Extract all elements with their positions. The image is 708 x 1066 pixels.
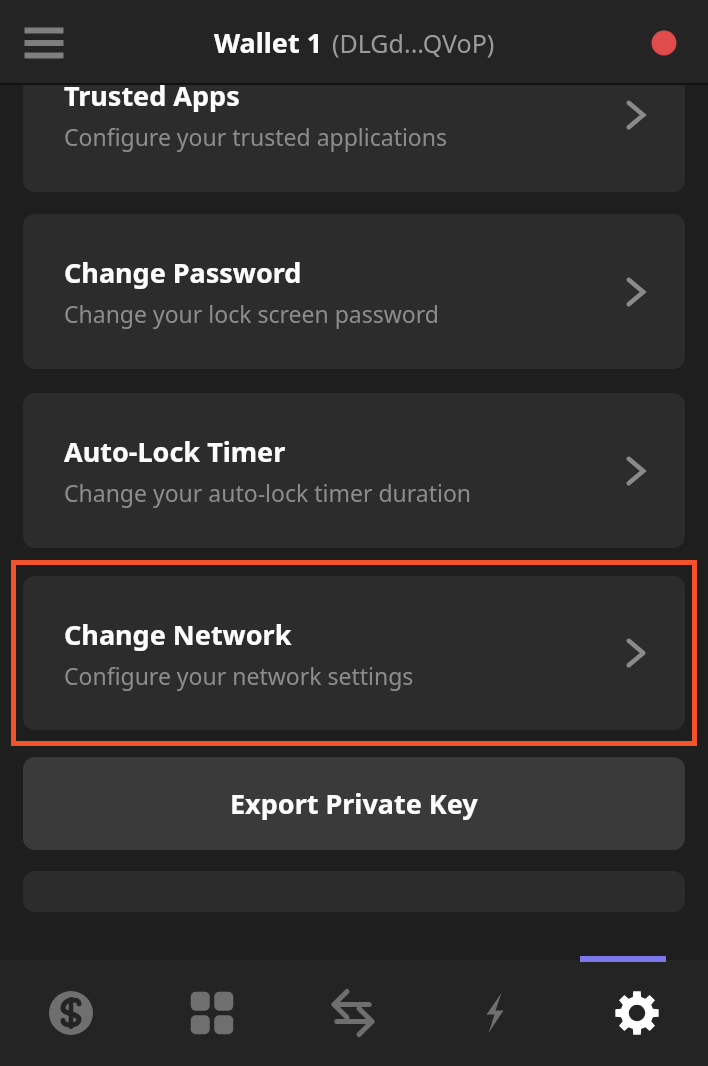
button[interactable]: Change Network: [23, 576, 685, 730]
button[interactable]: Balance: [0, 960, 141, 1066]
staticText: Change Network: [64, 616, 292, 653]
button[interactable]: Activity: [424, 960, 566, 1066]
staticText: Configure your network settings: [64, 660, 414, 691]
staticText: Change Password: [64, 254, 302, 291]
staticText: Auto-Lock Timer: [64, 433, 286, 470]
button[interactable]: Export Private Key: [23, 757, 685, 850]
staticText: Export Private Key: [230, 785, 478, 822]
button[interactable]: Menu: [8, 12, 80, 74]
button[interactable]: Trusted Apps: [23, 85, 685, 192]
staticText: Change your lock screen password: [64, 298, 439, 329]
button[interactable]: Apps: [141, 960, 282, 1066]
staticText: Wallet 1: [214, 24, 323, 61]
button[interactable]: Connection status: [639, 18, 689, 68]
button[interactable]: Auto-Lock Timer: [23, 393, 685, 548]
button[interactable]: Change Password: [23, 214, 685, 369]
button[interactable]: Settings: [566, 960, 708, 1066]
button[interactable]: Swap: [282, 960, 424, 1066]
staticText: Change your auto-lock timer duration: [64, 477, 472, 508]
staticText: Trusted Apps: [64, 85, 240, 114]
staticText: (DLGd...QVoP): [332, 26, 495, 60]
staticText: Configure your trusted applications: [64, 121, 448, 152]
